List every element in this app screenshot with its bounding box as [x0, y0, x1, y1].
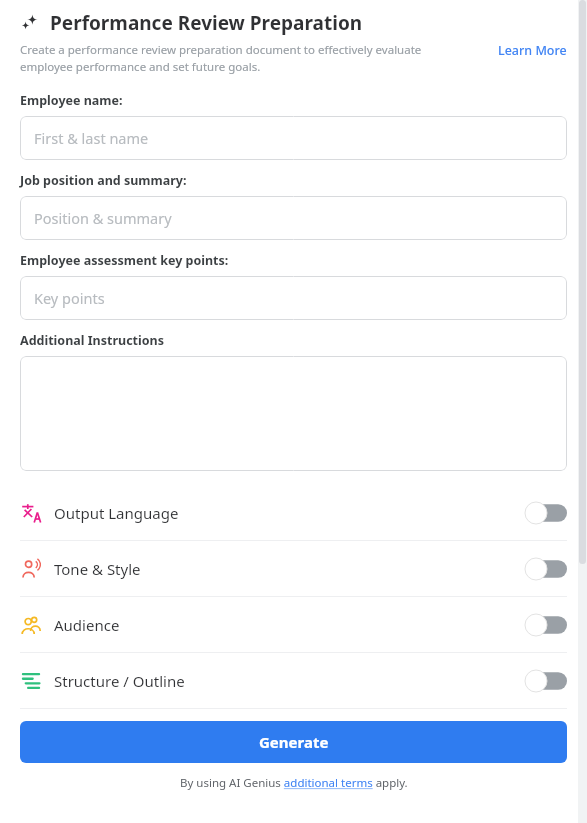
button[interactable]: Key points: [20, 276, 567, 320]
button[interactable]: Toggle: [525, 502, 567, 524]
staticText: Key points: [34, 288, 105, 308]
button[interactable]: [20, 356, 567, 471]
staticText: Job position and summary:: [20, 172, 187, 189]
button[interactable]: First & last name: [20, 116, 567, 160]
button[interactable]: Learn More: [498, 42, 567, 59]
staticText: Tone & Style: [54, 559, 141, 579]
button[interactable]: Tone & Style: [0, 541, 587, 596]
staticText: Employee name:: [20, 92, 123, 109]
button[interactable]: Position & summary: [20, 196, 567, 240]
button[interactable]: Toggle: [525, 614, 567, 636]
staticText: Audience: [54, 615, 120, 635]
staticText: Employee assessment key points:: [20, 252, 229, 269]
staticText: Create a performance review preparation …: [20, 42, 465, 74]
staticText: Additional Instructions: [20, 332, 164, 349]
staticText: Output Language: [54, 503, 179, 523]
staticText: Position & summary: [34, 208, 172, 228]
staticText: Learn More: [498, 42, 567, 59]
staticText: Performance Review Preparation: [50, 10, 363, 36]
button[interactable]: By using AI Genius additional terms appl…: [180, 775, 408, 791]
button[interactable]: Toggle: [525, 558, 567, 580]
staticText: Generate: [259, 732, 329, 752]
staticText: By using AI Genius additional terms appl…: [180, 775, 408, 791]
button[interactable]: Toggle: [525, 670, 567, 692]
button[interactable]: Output Language: [0, 485, 587, 540]
button[interactable]: Structure / Outline: [0, 653, 587, 708]
staticText: First & last name: [34, 128, 149, 148]
staticText: Structure / Outline: [54, 671, 185, 691]
button[interactable]: Generate: [20, 721, 567, 763]
button[interactable]: Audience: [0, 597, 587, 652]
